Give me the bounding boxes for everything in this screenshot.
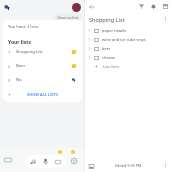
button[interactable]: SHOW ALL LISTS xyxy=(3,88,82,100)
staticText: wine and ice cube trays xyxy=(102,37,146,42)
button[interactable]: 1 xyxy=(3,45,82,59)
button[interactable]: Add image xyxy=(88,163,95,170)
staticText: List item xyxy=(103,64,119,69)
staticText: Your lists xyxy=(8,39,31,46)
staticText: Show my lists xyxy=(57,15,79,20)
staticText: Beer xyxy=(16,63,26,69)
button[interactable]: Assistant xyxy=(3,3,12,12)
button[interactable]: Back xyxy=(88,3,96,11)
button[interactable]: Account xyxy=(72,3,81,12)
button[interactable]: Settings xyxy=(70,157,78,165)
staticText: beer xyxy=(102,46,111,51)
button[interactable]: More xyxy=(162,162,169,169)
button[interactable]: Remind me xyxy=(150,3,157,10)
button[interactable]: 2 xyxy=(3,59,82,73)
staticText: SHOW ALL LISTS xyxy=(27,92,59,97)
button[interactable]: List item xyxy=(85,62,172,71)
staticText: Edited 9:56 PM xyxy=(115,163,142,168)
button[interactable]: wine and ice cube trays xyxy=(85,35,172,44)
staticText: 3 xyxy=(8,78,11,83)
staticText: cheese xyxy=(102,55,116,60)
button[interactable]: Pin note xyxy=(138,3,145,10)
staticText: Shopping List xyxy=(89,16,125,24)
button[interactable]: cheese xyxy=(85,53,172,62)
staticText: You have 3 lists. xyxy=(8,24,40,30)
button[interactable]: beer xyxy=(85,44,172,53)
button[interactable]: Archive xyxy=(162,3,169,10)
staticText: 2 xyxy=(8,64,11,69)
staticText: paper towels xyxy=(102,28,127,33)
staticText: No xyxy=(16,77,22,83)
button[interactable]: Show my lists xyxy=(54,13,82,22)
button[interactable]: Keyboard xyxy=(4,156,12,164)
button[interactable] xyxy=(25,155,66,168)
staticText: 1 xyxy=(8,50,11,55)
button[interactable]: paper towels xyxy=(85,26,172,35)
button[interactable]: More options xyxy=(162,15,169,22)
button[interactable]: 3 xyxy=(3,73,82,87)
staticText: Shopping List xyxy=(16,49,43,55)
